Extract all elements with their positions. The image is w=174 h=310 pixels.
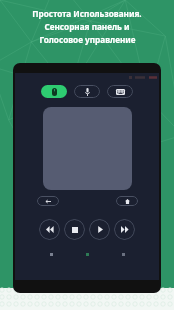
staticText: Сенсорная панель и <box>44 21 130 32</box>
button[interactable]: Stop <box>64 219 85 240</box>
staticText: Голосовое управление <box>39 34 136 45</box>
button[interactable]: Touchpad <box>43 107 132 190</box>
button[interactable]: Home <box>116 196 138 206</box>
button[interactable]: Mode <box>74 85 100 98</box>
button[interactable]: Previous <box>39 219 60 240</box>
button[interactable]: Next <box>114 219 135 240</box>
staticText: Простота Использования. <box>32 8 142 19</box>
button[interactable]: Mode <box>41 85 67 98</box>
button[interactable]: Back <box>37 196 59 206</box>
button[interactable]: Mode <box>107 85 133 98</box>
button[interactable]: Play <box>89 219 110 240</box>
